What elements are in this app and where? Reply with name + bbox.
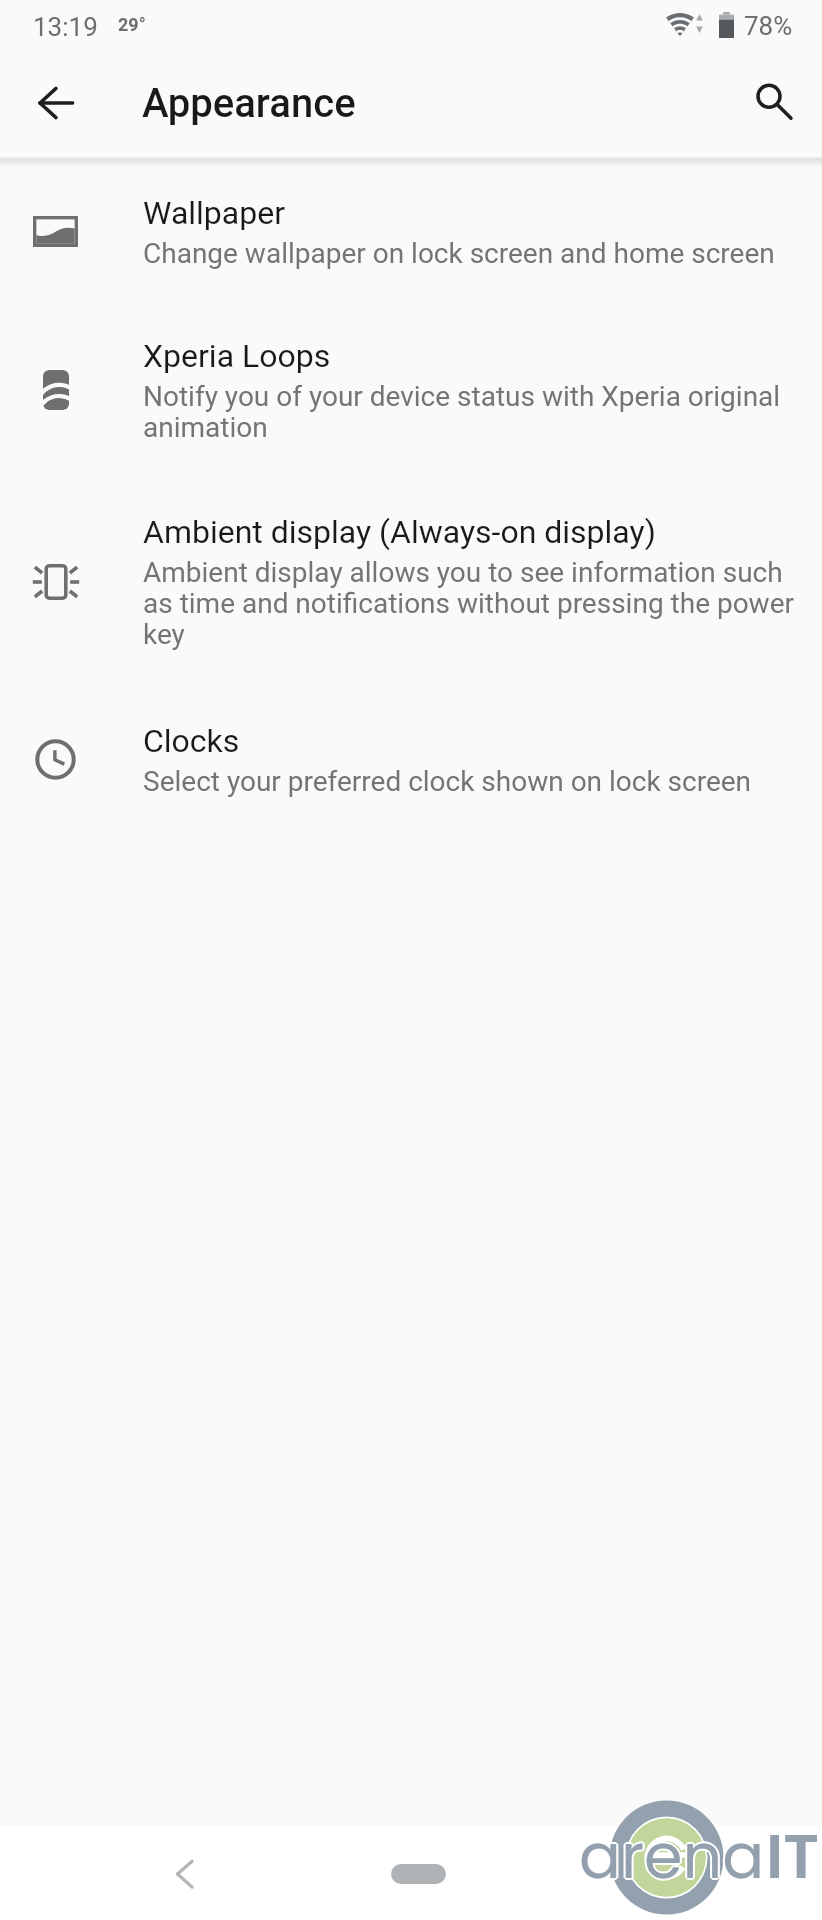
button[interactable]: Home xyxy=(387,1842,451,1906)
staticText: Xperia Loops xyxy=(143,337,331,375)
staticText: arena xyxy=(579,1813,765,1900)
staticText: 78% xyxy=(744,11,793,41)
staticText: arena xyxy=(579,1811,765,1898)
staticText: Ambient display allows you to see inform… xyxy=(143,558,805,651)
button[interactable]: Ambient display (Always-on display) xyxy=(0,513,822,650)
staticText: 13:19 xyxy=(33,12,98,42)
button[interactable]: Back xyxy=(145,1842,209,1906)
staticText: Appearance xyxy=(142,80,356,127)
staticText: Change wallpaper on lock screen and home… xyxy=(143,239,775,270)
staticText: arena xyxy=(578,1812,764,1899)
staticText: Notify you of your device status with Xp… xyxy=(143,382,805,444)
staticText: 29° xyxy=(118,14,146,35)
staticText: arena xyxy=(580,1814,766,1901)
staticText: Select your preferred clock shown on loc… xyxy=(143,767,752,798)
staticText: Ambient display (Always-on display) xyxy=(143,513,656,551)
button[interactable]: Wallpaper xyxy=(0,194,822,269)
staticText: Wallpaper xyxy=(143,194,285,232)
staticText: arena xyxy=(580,1813,766,1900)
staticText: arena xyxy=(578,1814,764,1901)
staticText: Clocks xyxy=(143,722,240,760)
button[interactable]: Navigate up xyxy=(16,63,96,143)
staticText: arena xyxy=(581,1813,767,1900)
button[interactable]: Xperia Loops xyxy=(0,337,822,443)
staticText: arena xyxy=(580,1812,766,1899)
staticText: arena xyxy=(579,1812,765,1899)
staticText: arena xyxy=(577,1813,763,1900)
button[interactable]: Clocks xyxy=(0,722,822,797)
button[interactable]: Search xyxy=(731,60,811,140)
staticText: arena xyxy=(579,1815,765,1902)
staticText: arena xyxy=(579,1814,765,1901)
staticText: IT xyxy=(766,1813,820,1900)
staticText: arena xyxy=(578,1813,764,1900)
